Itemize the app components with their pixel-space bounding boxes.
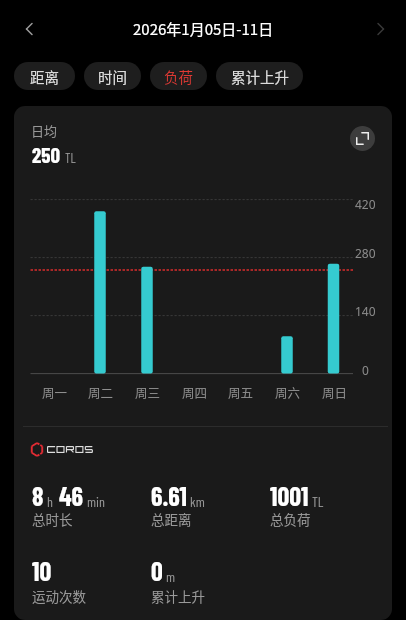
- staticText: 周一: [42, 383, 68, 401]
- staticText: 46: [59, 480, 84, 511]
- staticText: 周日: [322, 383, 348, 401]
- staticText: TL: [312, 493, 324, 510]
- staticText: 累计上升: [231, 66, 289, 87]
- staticText: TL: [65, 150, 76, 166]
- staticText: 总时长: [32, 509, 73, 529]
- staticText: 周六: [275, 383, 301, 401]
- staticText: 周四: [182, 383, 208, 401]
- staticText: 280: [355, 245, 376, 261]
- button[interactable]: 时间: [84, 62, 141, 90]
- staticText: 140: [355, 303, 376, 319]
- staticText: 2026年1月05日-11日: [133, 18, 274, 40]
- staticText: km: [190, 493, 205, 510]
- button[interactable]: 距离: [14, 62, 75, 90]
- staticText: 距离: [30, 66, 59, 87]
- staticText: 时间: [98, 66, 127, 87]
- staticText: 日均: [31, 121, 58, 140]
- staticText: min: [87, 493, 105, 510]
- staticText: 负荷: [164, 66, 193, 87]
- staticText: 0: [151, 555, 163, 586]
- button[interactable]: Expand chart: [350, 126, 375, 151]
- staticText: 运动次数: [32, 586, 86, 606]
- staticText: 周二: [88, 383, 114, 401]
- staticText: h: [47, 493, 53, 510]
- staticText: 6.61: [151, 480, 187, 511]
- staticText: 0: [362, 362, 369, 378]
- staticText: 总负荷: [270, 509, 311, 529]
- button[interactable]: Previous week: [12, 11, 48, 47]
- staticText: 累计上升: [151, 586, 205, 606]
- staticText: 周五: [228, 383, 254, 401]
- button[interactable]: 负荷: [150, 62, 207, 90]
- staticText: 总距离: [151, 509, 192, 529]
- staticText: 1001: [270, 480, 309, 511]
- staticText: 8: [32, 480, 44, 511]
- staticText: 420: [355, 196, 376, 212]
- button[interactable]: 累计上升: [216, 62, 303, 90]
- staticText: 10: [32, 555, 52, 586]
- staticText: m: [166, 568, 176, 585]
- button[interactable]: Next week: [362, 11, 398, 47]
- staticText: 250: [32, 142, 60, 167]
- staticText: 周三: [135, 383, 161, 401]
